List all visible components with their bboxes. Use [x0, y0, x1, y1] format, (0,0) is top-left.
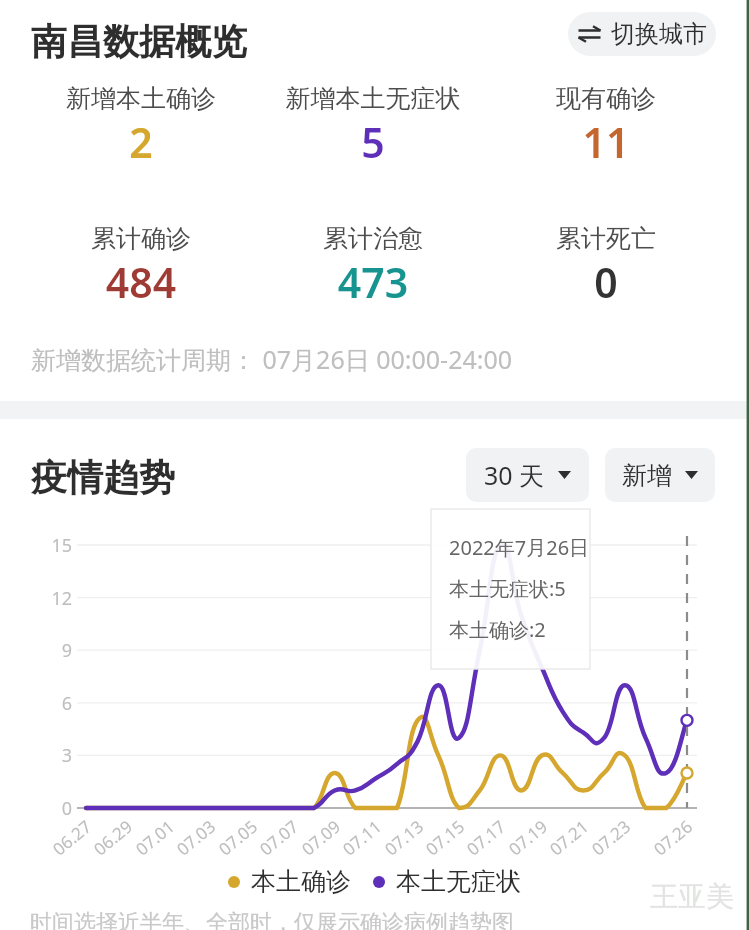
staticText: 2022年7月26日	[449, 534, 590, 561]
staticText: 6	[32, 691, 72, 716]
staticText: 9	[32, 638, 72, 663]
staticText: 07.01	[131, 814, 179, 860]
staticText: 07.26	[649, 814, 697, 860]
staticText: 王亚美	[650, 879, 734, 914]
staticText: 12	[32, 586, 72, 611]
staticText: 累计死亡	[486, 223, 726, 254]
staticText: 切换城市	[611, 19, 707, 49]
staticText: 本土无症状	[396, 866, 521, 897]
staticText: 新增本土确诊	[21, 83, 261, 114]
staticText: 0	[486, 254, 726, 310]
staticText: 2	[21, 114, 261, 170]
staticText: 疫情趋势	[31, 455, 175, 500]
staticText: 07.15	[421, 814, 469, 860]
staticText: 07.19	[504, 814, 552, 860]
staticText: 07.09	[297, 814, 345, 860]
button[interactable]: 本土无症状	[373, 866, 521, 897]
staticText: 新增本土无症状	[253, 83, 493, 114]
staticText: 累计治愈	[253, 223, 493, 254]
button[interactable]: 现有确诊	[486, 83, 726, 114]
staticText: 07.07	[255, 814, 303, 860]
button[interactable]: 新增本土无症状	[253, 83, 493, 114]
staticText: 07.05	[214, 814, 262, 860]
staticText: 07.13	[380, 814, 428, 860]
staticText: 5	[253, 114, 493, 170]
staticText: 06.29	[89, 814, 137, 860]
staticText: 新增数据统计周期： 07月26日 00:00-24:00	[31, 342, 513, 376]
staticText: 本土无症状:5	[449, 575, 566, 602]
staticText: 11	[486, 114, 726, 170]
staticText: 南昌数据概览	[31, 19, 247, 64]
staticText: 07.11	[338, 814, 386, 860]
staticText: 06.27	[48, 814, 96, 860]
button[interactable]: 累计死亡	[486, 223, 726, 254]
button[interactable]: 本土确诊	[228, 866, 351, 897]
staticText: 07.17	[462, 814, 510, 860]
button[interactable]: 新增	[605, 448, 715, 502]
staticText: 07.03	[172, 814, 220, 860]
staticText: 累计确诊	[21, 223, 261, 254]
button[interactable]: 累计确诊	[21, 223, 261, 254]
staticText: 0	[32, 796, 72, 821]
button[interactable]: Switch city	[568, 12, 716, 56]
button[interactable]: 累计治愈	[253, 223, 493, 254]
staticText: 15	[32, 533, 72, 558]
button[interactable]: 新增本土确诊	[21, 83, 261, 114]
staticText: 30 天	[484, 458, 545, 492]
other: Switch city	[578, 26, 601, 42]
staticText: 现有确诊	[486, 83, 726, 114]
staticText: 484	[21, 254, 261, 310]
staticText: 07.21	[545, 814, 593, 860]
button[interactable]: 30 天	[466, 448, 589, 502]
staticText: 时间选择近半年、全部时，仅展示确诊病例趋势图	[30, 909, 514, 930]
staticText: 本土确诊	[251, 866, 351, 897]
staticText: 07.23	[587, 814, 635, 860]
staticText: 473	[253, 254, 493, 310]
staticText: 新增	[622, 460, 672, 491]
staticText: 3	[32, 743, 72, 768]
staticText: 本土确诊:2	[449, 616, 546, 643]
